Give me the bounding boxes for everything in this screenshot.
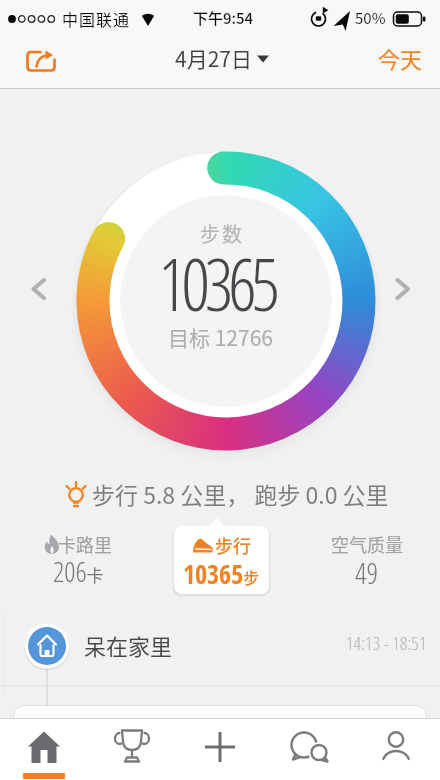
button[interactable]: 今天: [378, 42, 423, 74]
staticText: 步数: [200, 219, 244, 248]
button[interactable]: [88, 719, 176, 780]
staticText: 呆在家里: [84, 629, 173, 661]
button[interactable]: 4月27日: [175, 43, 269, 73]
button[interactable]: [20, 44, 62, 78]
staticText: 中国联通: [62, 7, 131, 30]
button[interactable]: 呆在家里: [0, 612, 440, 684]
staticText: 49: [355, 553, 379, 592]
staticText: 4月27日: [175, 43, 252, 73]
button[interactable]: [264, 719, 352, 780]
button[interactable]: 空气质量: [307, 531, 427, 557]
staticText: 10365步: [183, 556, 260, 591]
button[interactable]: [0, 719, 88, 780]
staticText: 14:13 - 18:51: [346, 630, 427, 656]
button[interactable]: 卡路里: [13, 531, 133, 557]
staticText: 卡路里: [58, 531, 112, 557]
staticText: 目标 12766: [168, 322, 273, 352]
staticText: 206卡: [53, 552, 104, 590]
staticText: 今天: [378, 42, 423, 74]
staticText: 50%: [355, 7, 386, 29]
button[interactable]: 步行: [174, 526, 269, 594]
staticText: 步行 5.8 公里， 跑步 0.0 公里: [92, 477, 389, 510]
staticText: 步行: [215, 532, 251, 558]
staticText: 空气质量: [331, 531, 403, 557]
staticText: 下午9:54: [193, 7, 254, 29]
button[interactable]: [352, 719, 440, 780]
button[interactable]: [388, 272, 418, 306]
staticText: 10365: [158, 234, 275, 332]
button[interactable]: [24, 272, 54, 306]
button[interactable]: [176, 719, 264, 780]
